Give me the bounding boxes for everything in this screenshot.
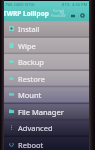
- staticText: Advanced: [18, 123, 53, 133]
- button[interactable]: Screenshot: [68, 11, 77, 20]
- staticText: By: [60, 10, 65, 15]
- staticText: Restore: [18, 74, 45, 84]
- staticText: TWRP Lollipop: [3, 9, 49, 18]
- staticText: File Manager: [18, 107, 64, 117]
- button[interactable]: File Manager: [4, 104, 89, 119]
- button[interactable]: Backup: [4, 54, 89, 69]
- staticText: 4:36 PM: [72, 2, 88, 7]
- staticText: Wipe: [18, 41, 36, 51]
- staticText: Pandu69: [51, 13, 66, 18]
- button[interactable]: Wipe: [4, 38, 89, 53]
- button[interactable]: Advanced: [4, 120, 89, 135]
- staticText: TWL GMO (ST)4:: [5, 2, 35, 7]
- staticText: Ported: [53, 8, 65, 13]
- staticText: Mount: [18, 90, 42, 100]
- staticText: Install: [18, 24, 40, 34]
- button[interactable]: Restore: [4, 71, 89, 86]
- button[interactable]: Mount: [4, 87, 89, 102]
- button[interactable]: Install: [4, 21, 89, 36]
- button[interactable]: Settings: [78, 11, 87, 20]
- staticText: 81%: [62, 2, 70, 7]
- button[interactable]: Reboot: [4, 137, 89, 150]
- staticText: Backup: [18, 57, 44, 67]
- staticText: Reboot: [18, 140, 44, 150]
